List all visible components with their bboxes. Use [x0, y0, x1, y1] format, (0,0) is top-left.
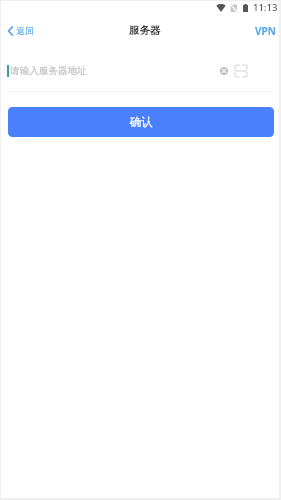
- staticText: 确认: [129, 115, 153, 130]
- staticText: 请输入服务器地址: [10, 65, 87, 77]
- button[interactable]: Scan QR code: [233, 63, 249, 79]
- button[interactable]: Clear text: [216, 63, 232, 79]
- staticText: 服务器: [129, 24, 161, 37]
- button[interactable]: 确认: [8, 107, 274, 137]
- staticText: 返回: [16, 25, 34, 36]
- staticText: 11:13: [253, 1, 278, 14]
- button[interactable]: VPN: [250, 20, 279, 42]
- button[interactable]: 返回: [1, 21, 40, 40]
